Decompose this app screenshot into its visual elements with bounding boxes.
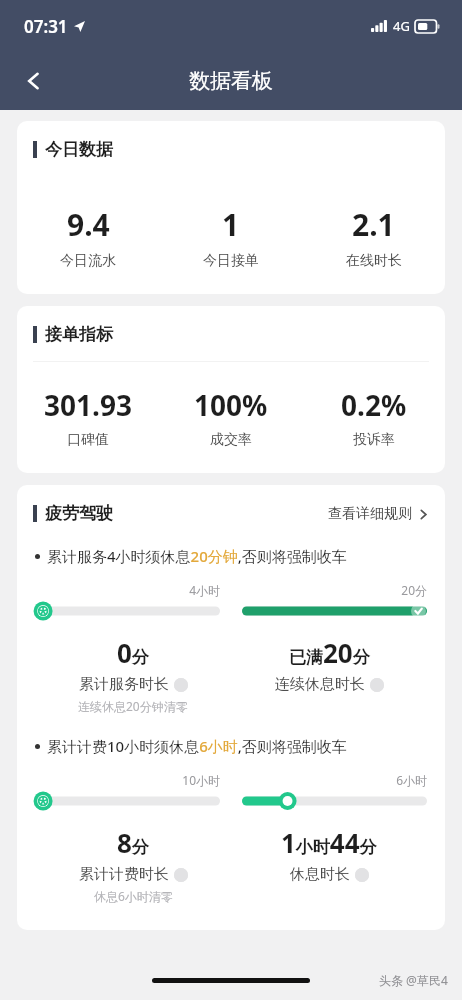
button[interactable]: 2.1 [302,204,445,270]
button[interactable]: 0分 [35,635,231,714]
staticText: 今日流水 [60,252,116,270]
staticText: 数据看板 [189,68,273,94]
staticText: 今日数据 [45,139,113,160]
staticText: 07:31 [24,15,68,38]
staticText: 6小时 [242,772,427,788]
staticText: 301.93 [44,386,132,424]
staticText: 已满20分 [289,635,370,670]
button[interactable]: Back [12,59,56,103]
staticText: 0分 [117,635,149,670]
staticText: 累计计费10小时须休息6小时,否则将强制收车 [47,736,347,756]
staticText: 今日接单 [203,252,259,270]
staticText: 查看详细规则 [328,505,412,523]
staticText: 连续休息时长 [275,675,365,694]
staticText: 8分 [117,825,149,860]
staticText: 投诉率 [353,431,395,449]
staticText: 累计服务4小时须休息20分钟,否则将强制收车 [47,546,347,566]
staticText: 4小时 [35,582,220,598]
staticText: 在线时长 [346,252,402,270]
staticText: 1小时44分 [281,825,377,860]
staticText: 20分 [242,582,427,598]
button[interactable]: 1小时44分 [231,825,427,884]
staticText: 9.4 [67,204,110,245]
button[interactable]: 已满20分 [231,635,427,694]
button[interactable]: 1 [159,204,302,270]
staticText: 1 [222,204,240,245]
staticText: 休息时长 [290,865,350,884]
button[interactable]: 8分 [35,825,231,904]
staticText: 疲劳驾驶 [45,503,113,524]
staticText: 100% [194,386,268,424]
staticText: 4G [393,17,410,35]
staticText: 累计服务时长 [79,675,169,694]
button[interactable]: 查看详细规则 [328,505,429,523]
staticText: 头条 @草民4 [379,972,448,988]
button[interactable]: 301.93 [17,386,159,449]
button[interactable]: 0.2% [302,386,445,449]
staticText: 累计计费时长 [79,865,169,884]
staticText: 连续休息20分钟清零 [78,698,188,714]
button[interactable]: 9.4 [17,204,159,270]
staticText: 0.2% [341,386,407,424]
button[interactable]: 100% [159,386,302,449]
staticText: 10小时 [35,772,220,788]
staticText: 接单指标 [45,324,113,345]
staticText: 2.1 [352,204,395,245]
staticText: 休息6小时清零 [94,888,173,904]
staticText: 口碑值 [67,431,109,449]
staticText: 成交率 [210,431,252,449]
